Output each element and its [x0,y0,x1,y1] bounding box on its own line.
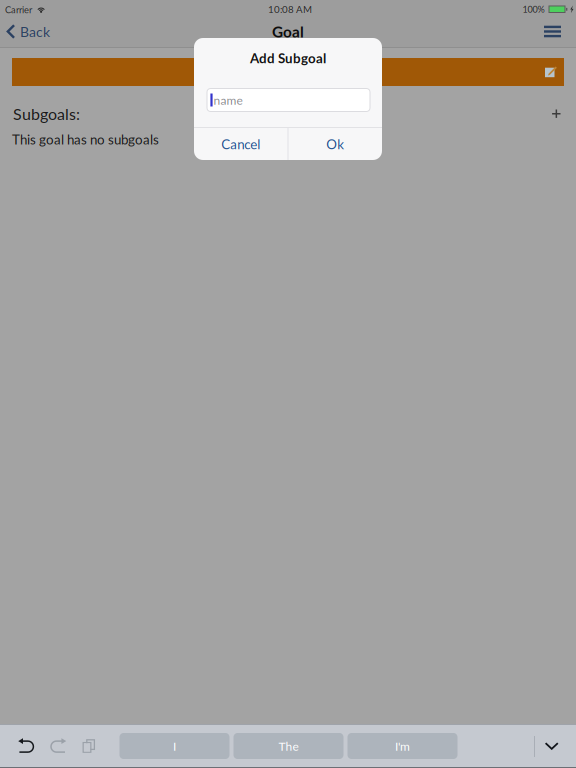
button[interactable]: Edit goal [12,58,564,86]
button[interactable]: I [119,733,229,759]
button[interactable]: Ok [288,128,382,160]
staticText: Add Subgoal [250,50,326,66]
button[interactable]: Menu [530,15,576,48]
staticText: I [173,739,176,753]
button[interactable]: The [233,733,343,759]
button[interactable]: Cancel [194,128,287,160]
staticText: Goal [272,22,304,41]
staticText: Subgoals: [13,104,80,123]
staticText: Back [20,23,50,40]
staticText: 10:08 AM [268,3,312,15]
staticText: This goal has no subgoals [12,131,159,147]
staticText: Cancel [221,136,260,152]
button[interactable]: Redo [42,725,74,767]
staticText: name [214,93,243,107]
button[interactable]: Hide keyboard [533,725,571,767]
button[interactable]: Back [0,15,60,48]
button[interactable]: I'm [347,733,457,759]
button[interactable]: Paste [74,725,103,767]
button[interactable]: Undo [10,725,42,767]
staticText: The [278,739,298,753]
staticText: 100% [522,4,544,15]
button[interactable]: Add subgoal [545,102,567,125]
staticText: Ok [326,136,344,152]
staticText: Carrier [5,4,32,15]
staticText: I'm [395,739,410,753]
